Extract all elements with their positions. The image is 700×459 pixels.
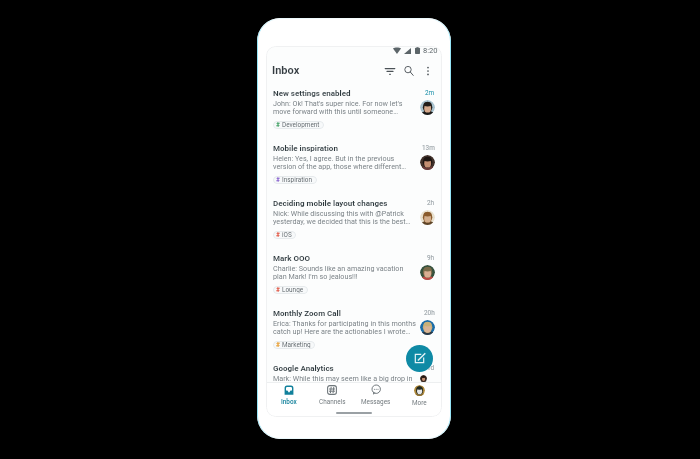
staticText: Lounge <box>282 286 304 294</box>
staticText: Mark: While this may seem like a big dro… <box>273 374 413 382</box>
staticText: yesterday, we decided that this is the b… <box>273 217 411 225</box>
staticText: # <box>276 341 280 349</box>
staticText: Mark OOO <box>273 254 311 263</box>
staticText: plan Mark! I'm so jealous!!! <box>273 272 358 280</box>
staticText: 13m <box>422 144 435 152</box>
staticText: Deciding mobile layout changes <box>273 199 388 208</box>
staticText: 1d <box>427 364 435 372</box>
staticText: version of the app, those where differen… <box>273 162 407 170</box>
staticText: Development <box>282 121 320 129</box>
button[interactable]: Channels <box>312 385 352 406</box>
staticText: 8:20 <box>423 46 438 55</box>
staticText: New settings enabled <box>273 89 351 98</box>
button[interactable]: Compose message <box>406 345 433 372</box>
staticText: # <box>276 176 280 184</box>
staticText: Google Analytics <box>273 364 334 373</box>
button[interactable]: More options <box>420 63 436 79</box>
staticText: Monthly Zoom Call <box>273 309 341 318</box>
staticText: Mobile inspiration <box>273 144 338 153</box>
button[interactable]: Deciding mobile layout changes <box>266 196 442 251</box>
staticText: Inbox <box>281 398 297 406</box>
button[interactable]: Mark OOO <box>266 251 442 306</box>
button[interactable]: Google Analytics <box>266 361 442 382</box>
staticText: iOS <box>282 231 292 239</box>
staticText: # <box>276 286 280 294</box>
staticText: 2h <box>427 199 435 207</box>
staticText: # <box>276 121 280 129</box>
staticText: Messages <box>361 398 391 406</box>
staticText: move forward with this until someone… <box>273 107 398 115</box>
button[interactable]: New settings enabled <box>266 86 442 141</box>
staticText: Helen: Yes, I agree. But in the previous <box>273 154 395 162</box>
button[interactable]: More <box>399 385 439 407</box>
button[interactable]: Messages <box>356 385 396 406</box>
staticText: Nick: While discussing this with @Patric… <box>273 209 405 217</box>
button[interactable]: Mobile inspiration <box>266 141 442 196</box>
staticText: Inbox <box>272 64 300 77</box>
staticText: Marketing <box>282 341 311 349</box>
staticText: # <box>276 231 280 239</box>
button[interactable]: Search <box>401 63 417 79</box>
staticText: More <box>412 399 427 407</box>
staticText: John: Ok! That's super nice. For now let… <box>273 99 403 107</box>
staticText: 20h <box>424 309 435 317</box>
staticText: catch up! Here are the actionables I wro… <box>273 327 411 335</box>
button[interactable]: Filter <box>382 63 398 79</box>
button[interactable]: Inbox <box>269 385 309 406</box>
staticText: 2m <box>425 89 435 97</box>
staticText: Charlie: Sounds like an amazing vacation <box>273 264 404 272</box>
staticText: Channels <box>319 398 346 406</box>
staticText: Erica: Thanks for participating in this … <box>273 319 416 327</box>
staticText: Inspiration <box>282 176 313 184</box>
staticText: 9h <box>427 254 435 262</box>
button[interactable]: Monthly Zoom Call <box>266 306 442 361</box>
